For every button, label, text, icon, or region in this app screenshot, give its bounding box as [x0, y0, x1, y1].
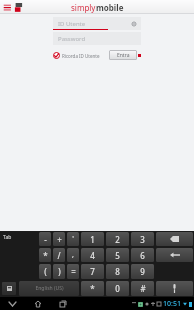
button[interactable]: Entra: [109, 50, 141, 60]
button[interactable]: 0: [106, 281, 129, 296]
staticText: 7: [90, 266, 95, 277]
button[interactable]: Key: [156, 232, 193, 246]
staticText: mobile: [96, 2, 124, 13]
button[interactable]: /: [53, 248, 65, 262]
button[interactable]: 1: [81, 232, 104, 246]
button[interactable]: (: [39, 264, 51, 279]
button[interactable]: Key: [156, 248, 193, 262]
button[interactable]: 4: [81, 248, 104, 262]
button[interactable]: Key: [156, 281, 193, 296]
button[interactable]: *: [81, 281, 104, 296]
staticText: 1: [90, 234, 95, 245]
button[interactable]: English (US): [19, 281, 79, 296]
staticText: ': [72, 234, 74, 244]
button[interactable]: -: [39, 232, 51, 246]
staticText: 5: [115, 250, 120, 261]
button[interactable]: +: [53, 232, 65, 246]
other: Backspace: [170, 236, 179, 242]
staticText: *: [43, 250, 48, 261]
button[interactable]: Ricorda ID Utente: [53, 52, 100, 59]
button[interactable]: ): [53, 264, 65, 279]
button[interactable]: Recent apps: [58, 299, 67, 308]
button[interactable]: Menu: [3, 3, 12, 12]
staticText: =: [71, 266, 76, 277]
staticText: 3: [140, 234, 145, 245]
staticText: ,: [72, 250, 74, 260]
staticText: Tab: [3, 234, 12, 241]
staticText: -: [44, 234, 47, 245]
button[interactable]: Password: [53, 32, 141, 45]
button[interactable]: 9: [131, 264, 154, 279]
staticText: Ricorda ID Utente: [62, 53, 100, 59]
button[interactable]: Switch keyboard: [2, 282, 16, 295]
staticText: #: [140, 283, 146, 294]
button[interactable]: 10:51: [163, 299, 181, 309]
staticText: Password: [58, 35, 86, 43]
button[interactable]: Settings: [131, 21, 137, 27]
staticText: +: [57, 234, 62, 245]
staticText: ID Utente: [58, 20, 86, 28]
staticText: ): [58, 266, 61, 277]
button[interactable]: =: [67, 264, 79, 279]
button[interactable]: 3: [131, 232, 154, 246]
button[interactable]: 5: [106, 248, 129, 262]
staticText: 8: [115, 266, 120, 277]
staticText: 0: [115, 283, 120, 294]
staticText: simply: [71, 2, 96, 13]
button[interactable]: #: [131, 281, 154, 296]
button[interactable]: Hide keyboard: [8, 299, 17, 308]
button[interactable]: Home: [33, 299, 42, 308]
button[interactable]: 7: [81, 264, 104, 279]
staticText: 2: [115, 234, 120, 245]
staticText: 4: [90, 250, 95, 261]
button[interactable]: 2: [106, 232, 129, 246]
staticText: English (US): [35, 285, 64, 292]
button[interactable]: 8: [106, 264, 129, 279]
button[interactable]: 6: [131, 248, 154, 262]
button[interactable]: App: [14, 3, 23, 12]
button[interactable]: ': [67, 232, 79, 246]
button[interactable]: *: [39, 248, 51, 262]
other: Voice input: [172, 284, 177, 293]
staticText: 6: [140, 250, 145, 261]
staticText: *: [90, 283, 95, 294]
staticText: (: [44, 266, 47, 277]
other: Enter: [170, 252, 180, 258]
staticText: Entra: [117, 52, 130, 59]
button[interactable]: ,: [67, 248, 79, 262]
button[interactable]: ID Utente: [53, 17, 141, 30]
staticText: 9: [140, 266, 145, 277]
staticText: /: [57, 250, 61, 261]
